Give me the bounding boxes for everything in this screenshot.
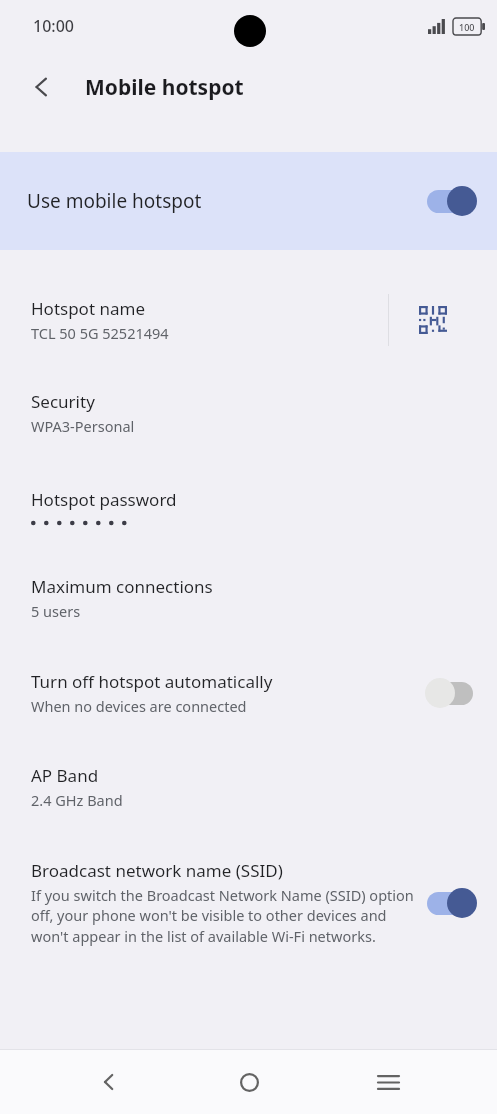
button[interactable]: Maximum connections <box>0 575 497 621</box>
button[interactable]: Share hotspot QR code <box>389 292 477 348</box>
staticText: AP Band <box>31 764 99 787</box>
button[interactable]: Hotspot password <box>0 488 497 527</box>
button[interactable]: Use mobile hotspot <box>0 152 497 250</box>
staticText: Broadcast network name (SSID) <box>31 859 283 882</box>
button[interactable]: Hotspot name <box>0 292 497 348</box>
staticText: 10:00 <box>33 15 74 37</box>
staticText: Hotspot password <box>31 488 177 511</box>
button[interactable]: Back <box>20 65 64 109</box>
staticText: WPA3-Personal <box>31 416 135 436</box>
button[interactable]: Back <box>79 1052 139 1112</box>
button[interactable]: Broadcast network name (SSID) <box>0 859 497 947</box>
button[interactable]: Turn off hotspot automatically <box>0 670 497 716</box>
staticText: 100 <box>459 21 475 33</box>
staticText: TCL 50 5G 52521494 <box>31 323 169 343</box>
staticText: Turn off hotspot automatically <box>31 670 273 693</box>
staticText: Mobile hotspot <box>85 73 244 102</box>
staticText: If you switch the Broadcast Network Name… <box>31 885 415 947</box>
staticText: Security <box>31 390 95 413</box>
staticText: Maximum connections <box>31 575 213 598</box>
staticText: Hotspot name <box>31 297 145 320</box>
staticText: Use mobile hotspot <box>27 188 425 214</box>
button[interactable]: Security <box>0 390 497 436</box>
button[interactable]: Home <box>219 1052 279 1112</box>
staticText: 2.4 GHz Band <box>31 790 123 810</box>
button[interactable]: Recent apps <box>358 1052 418 1112</box>
staticText: When no devices are connected <box>31 696 247 716</box>
staticText: 5 users <box>31 601 81 621</box>
button[interactable]: AP Band <box>0 764 497 810</box>
